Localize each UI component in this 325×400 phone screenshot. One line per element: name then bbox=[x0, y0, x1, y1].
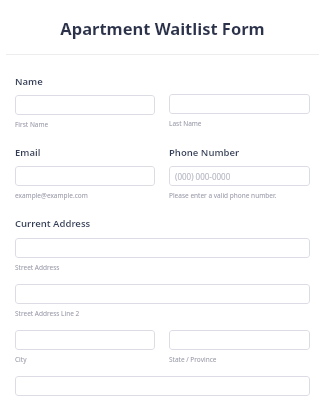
staticText: First Name bbox=[15, 120, 49, 129]
staticText: State / Province bbox=[169, 355, 217, 364]
staticText: Street Address bbox=[15, 263, 60, 272]
button[interactable] bbox=[15, 166, 155, 186]
staticText: Email bbox=[15, 146, 41, 159]
staticText: City bbox=[15, 355, 27, 364]
staticText: Apartment Waitlist Form bbox=[0, 17, 325, 39]
staticText: Current Address bbox=[15, 217, 91, 230]
staticText: Last Name bbox=[169, 119, 202, 128]
staticText: Name bbox=[15, 75, 43, 88]
staticText: example@example.com bbox=[15, 191, 88, 200]
button[interactable] bbox=[15, 238, 310, 258]
button[interactable] bbox=[169, 330, 310, 350]
staticText: Street Address Line 2 bbox=[15, 309, 80, 318]
staticText: Please enter a valid phone number. bbox=[169, 191, 277, 200]
button[interactable] bbox=[15, 330, 155, 350]
staticText: Phone Number bbox=[169, 146, 240, 159]
button[interactable] bbox=[169, 94, 310, 114]
button[interactable]: (000) 000-0000 bbox=[169, 166, 310, 186]
button[interactable] bbox=[15, 376, 310, 396]
button[interactable] bbox=[15, 95, 155, 115]
staticText: (000) 000-0000 bbox=[175, 171, 231, 182]
button[interactable] bbox=[15, 284, 310, 304]
